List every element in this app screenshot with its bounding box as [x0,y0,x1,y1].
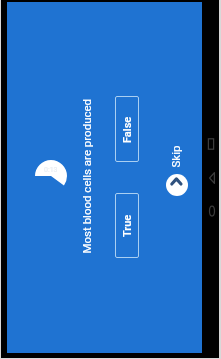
button[interactable]: Next question [166,174,188,196]
button[interactable]: Home [203,194,221,228]
staticText: Most blood cells are produced [79,98,92,253]
button[interactable]: Back [203,161,221,195]
staticText: True [121,214,134,237]
button[interactable]: False [115,96,139,162]
staticText: 0:13 [44,166,58,174]
staticText: False [121,116,134,143]
staticText: Skip [168,145,181,167]
button[interactable]: Recents [202,127,220,161]
button[interactable]: True [115,193,139,258]
